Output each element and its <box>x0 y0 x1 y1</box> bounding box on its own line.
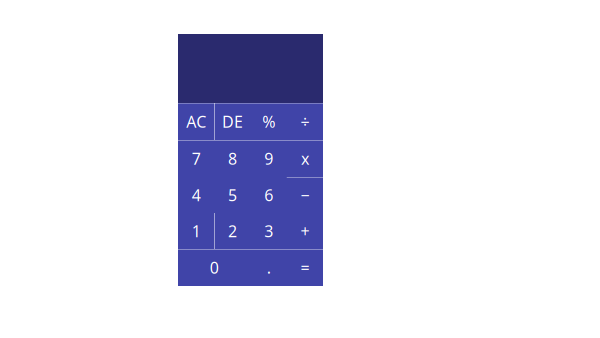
staticText: 5 <box>228 184 237 206</box>
button[interactable]: 7 <box>178 140 214 177</box>
staticText: 1 <box>192 220 201 242</box>
button[interactable]: DE <box>214 103 250 140</box>
button[interactable]: 6 <box>250 177 287 213</box>
button[interactable]: 2 <box>214 213 250 249</box>
button[interactable]: x <box>287 140 323 177</box>
button[interactable]: 0 <box>178 249 250 286</box>
button[interactable]: 9 <box>250 140 287 177</box>
button[interactable]: % <box>250 103 287 140</box>
staticText: 4 <box>192 184 201 206</box>
staticText: DE <box>222 111 243 132</box>
staticText: 6 <box>264 184 273 206</box>
staticText: 9 <box>264 148 273 169</box>
staticText: 0 <box>210 257 219 278</box>
staticText: AC <box>186 111 206 132</box>
staticText: x <box>301 148 309 169</box>
button[interactable]: 1 <box>178 213 214 249</box>
button[interactable]: 5 <box>214 177 250 213</box>
staticText: ÷ <box>300 111 309 132</box>
staticText: % <box>262 111 275 132</box>
staticText: 8 <box>228 148 237 169</box>
button[interactable]: + <box>287 213 323 249</box>
staticText: − <box>300 184 309 206</box>
button[interactable]: = <box>287 249 323 286</box>
button[interactable]: ÷ <box>287 103 323 140</box>
staticText: 2 <box>228 220 237 242</box>
button[interactable]: . <box>250 249 287 286</box>
staticText: 7 <box>192 148 201 169</box>
button[interactable]: 3 <box>250 213 287 249</box>
staticText: . <box>267 257 271 278</box>
staticText: + <box>300 220 309 242</box>
staticText: = <box>300 257 309 278</box>
staticText: 3 <box>264 220 273 242</box>
button[interactable]: 4 <box>178 177 214 213</box>
button[interactable]: − <box>287 177 323 213</box>
button[interactable]: AC <box>178 103 214 140</box>
button[interactable]: 8 <box>214 140 250 177</box>
